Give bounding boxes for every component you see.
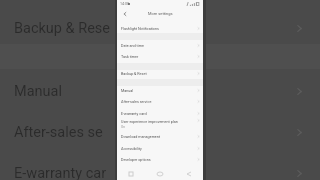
staticText: On xyxy=(121,125,125,129)
staticText: More settings xyxy=(148,11,173,16)
staticText: Backup & Reset xyxy=(121,72,147,76)
staticText: Backup & Rese xyxy=(14,20,111,37)
button[interactable]: Recents xyxy=(117,167,145,180)
button[interactable]: Manual xyxy=(117,85,203,96)
staticText: Download management xyxy=(121,135,161,139)
button[interactable]: Back xyxy=(174,167,203,180)
button[interactable]: Accessibility xyxy=(117,143,203,154)
staticText: E-warranty car xyxy=(14,165,107,180)
staticText: E-warranty card xyxy=(121,112,147,116)
staticText: Manual xyxy=(14,83,62,100)
staticText: After-sales service xyxy=(121,100,152,104)
button[interactable]: After-sales service xyxy=(117,96,203,107)
button[interactable]: Flashlight Notifications xyxy=(117,23,203,34)
staticText: 14:08 xyxy=(120,2,129,6)
staticText: Manual xyxy=(121,89,134,93)
button[interactable]: After-sales se xyxy=(0,115,320,149)
button[interactable]: Manual xyxy=(0,74,320,108)
button[interactable]: Task timer xyxy=(117,51,203,62)
staticText: User experience improvement plan xyxy=(121,120,178,124)
button[interactable]: Back xyxy=(120,9,129,18)
button[interactable]: Date and time xyxy=(117,40,203,51)
button[interactable]: Home xyxy=(145,167,174,180)
staticText: Date and time xyxy=(121,44,144,48)
button[interactable]: User experience improvement plan xyxy=(117,116,203,133)
button[interactable]: E-warranty car xyxy=(0,156,320,180)
staticText: After-sales se xyxy=(14,124,103,141)
staticText: Developer options xyxy=(121,158,151,162)
button[interactable]: Developer options xyxy=(117,154,203,165)
staticText: Flashlight Notifications xyxy=(121,27,159,31)
button[interactable]: E-warranty card xyxy=(117,108,203,119)
button[interactable]: Download management xyxy=(117,131,203,142)
staticText: Accessibility xyxy=(121,147,142,151)
staticText: Task timer xyxy=(121,55,139,59)
button[interactable]: Backup & Reset xyxy=(117,68,203,79)
button[interactable]: Backup & Rese xyxy=(0,11,320,45)
